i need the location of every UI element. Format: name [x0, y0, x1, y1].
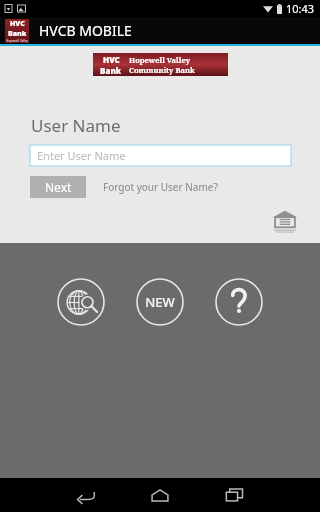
staticText: HVCB MOBILE: [39, 21, 132, 40]
button[interactable]: Enter User Name: [30, 145, 291, 166]
button[interactable]: Next: [30, 176, 86, 198]
staticText: Bank: [8, 29, 27, 39]
staticText: Next: [45, 179, 72, 195]
staticText: HVC: [103, 54, 120, 65]
button[interactable]: Home: [123, 478, 197, 512]
button[interactable]: App icon: [5, 19, 29, 43]
staticText: Bank: [100, 65, 122, 76]
button[interactable]: Forgot your User Name?: [100, 177, 221, 197]
button[interactable]: HVC: [93, 53, 228, 76]
button[interactable]: Branch locator: [57, 278, 105, 326]
button[interactable]: NEW: [136, 278, 184, 326]
button[interactable]: Recent apps: [197, 478, 271, 512]
staticText: Forgot your User Name?: [103, 180, 218, 194]
staticText: Hopewell Valley Community Bank: [129, 55, 228, 75]
button[interactable]: Help: [215, 278, 263, 326]
staticText: Enter User Name: [37, 148, 126, 163]
staticText: NEW: [145, 293, 175, 311]
staticText: Hopewell Valley: [6, 39, 29, 43]
button[interactable]: Back: [49, 478, 123, 512]
staticText: 10:43: [286, 1, 315, 16]
staticText: HVC: [10, 19, 25, 29]
staticText: User Name: [31, 114, 121, 137]
